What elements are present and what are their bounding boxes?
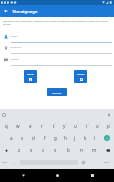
staticText: 9 bbox=[99, 122, 101, 124]
button[interactable]: Recent apps bbox=[80, 169, 104, 182]
staticText: , bbox=[14, 161, 15, 165]
staticText: Prénom bbox=[10, 35, 18, 38]
button[interactable]: z bbox=[13, 144, 25, 156]
button[interactable]: f bbox=[39, 132, 50, 144]
staticText: Message bbox=[10, 58, 19, 61]
staticText: 2 bbox=[19, 122, 21, 124]
button[interactable]: Enter bbox=[98, 156, 114, 169]
button[interactable]: 0 bbox=[103, 120, 114, 132]
staticText: r bbox=[41, 123, 43, 129]
staticText: c bbox=[42, 147, 45, 153]
button[interactable]: Message bbox=[0, 56, 114, 67]
button[interactable]: 8 bbox=[81, 120, 92, 132]
staticText: v bbox=[54, 147, 57, 153]
staticText: 8 bbox=[88, 122, 90, 124]
button[interactable]: 5 bbox=[48, 120, 59, 132]
staticText: n bbox=[80, 147, 83, 153]
button[interactable]: Prénom bbox=[0, 33, 114, 44]
staticText: ?123 bbox=[104, 161, 109, 164]
button[interactable]: Space bbox=[19, 156, 79, 169]
button[interactable]: Keyboard settings bbox=[2, 113, 6, 117]
staticText: w bbox=[16, 123, 20, 129]
button[interactable]: 2 bbox=[12, 120, 24, 132]
button[interactable]: 4 bbox=[36, 120, 48, 132]
staticText: t bbox=[53, 123, 55, 129]
staticText: z bbox=[18, 147, 21, 153]
staticText: b bbox=[67, 147, 70, 153]
button[interactable]: v bbox=[49, 144, 62, 156]
staticText: g bbox=[54, 135, 57, 141]
staticText: q bbox=[5, 123, 8, 129]
button[interactable]: Camera bbox=[74, 70, 87, 83]
button[interactable]: k bbox=[80, 132, 90, 144]
staticText: Témoignage bbox=[12, 8, 38, 14]
button[interactable]: Back bbox=[0, 5, 12, 17]
button[interactable]: Voice input bbox=[107, 113, 111, 117]
button[interactable]: ?123 bbox=[0, 156, 9, 169]
button[interactable]: l bbox=[90, 132, 100, 144]
staticText: s bbox=[21, 135, 24, 141]
staticText: . bbox=[93, 161, 94, 165]
button[interactable]: Envoyer bbox=[47, 88, 67, 96]
staticText: 7 bbox=[77, 122, 79, 124]
staticText: a bbox=[10, 135, 13, 141]
button[interactable]: 3 bbox=[24, 120, 36, 132]
button[interactable]: Enter bbox=[100, 132, 114, 144]
button[interactable]: m bbox=[88, 144, 101, 156]
button[interactable]: Backspace bbox=[101, 144, 114, 156]
staticText: k bbox=[84, 135, 87, 141]
button[interactable]: c bbox=[37, 144, 49, 156]
button[interactable]: j bbox=[70, 132, 80, 144]
staticText: Envoyer bbox=[52, 91, 62, 94]
button[interactable]: g bbox=[50, 132, 60, 144]
staticText: h bbox=[64, 135, 67, 141]
button[interactable]: Back bbox=[11, 169, 35, 182]
staticText: f bbox=[44, 135, 46, 141]
staticText: 5 bbox=[55, 122, 57, 124]
button[interactable]: a bbox=[6, 132, 17, 144]
button[interactable]: n bbox=[75, 144, 88, 156]
staticText: 1 bbox=[7, 122, 9, 124]
button[interactable]: Galerie bbox=[24, 70, 37, 83]
staticText: Localisation bbox=[10, 46, 22, 49]
staticText: l bbox=[94, 135, 96, 141]
staticText: Quelque chose à partager ? Signalez-nous… bbox=[3, 19, 113, 25]
staticText: Camera bbox=[77, 73, 85, 76]
button[interactable]: h bbox=[60, 132, 70, 144]
button[interactable]: Localisation bbox=[0, 44, 114, 55]
button[interactable]: 9 bbox=[92, 120, 103, 132]
staticText: d bbox=[32, 135, 35, 141]
staticText: u bbox=[74, 123, 77, 129]
staticText: j bbox=[74, 135, 76, 141]
staticText: i bbox=[86, 123, 88, 129]
staticText: 6 bbox=[66, 122, 68, 124]
staticText: m bbox=[92, 147, 97, 153]
staticText: ?123 bbox=[2, 161, 7, 164]
button[interactable]: Emoji bbox=[79, 156, 88, 169]
button[interactable]: 7 bbox=[70, 120, 81, 132]
button[interactable]: b bbox=[62, 144, 75, 156]
staticText: o bbox=[96, 123, 99, 129]
button[interactable]: Shift bbox=[0, 144, 13, 156]
button[interactable]: s bbox=[17, 132, 28, 144]
staticText: 0 bbox=[110, 122, 112, 124]
staticText: x bbox=[30, 147, 33, 153]
staticText: 4 bbox=[43, 122, 45, 124]
button[interactable]: x bbox=[25, 144, 37, 156]
staticText: y bbox=[63, 123, 66, 129]
button[interactable]: 6 bbox=[59, 120, 70, 132]
button[interactable]: d bbox=[28, 132, 39, 144]
staticText: p bbox=[107, 123, 110, 129]
button[interactable]: 1 bbox=[0, 120, 12, 132]
staticText: e bbox=[29, 123, 32, 129]
button[interactable]: Home bbox=[45, 169, 69, 182]
staticText: 3 bbox=[31, 122, 33, 124]
staticText: Galerie bbox=[27, 73, 34, 76]
